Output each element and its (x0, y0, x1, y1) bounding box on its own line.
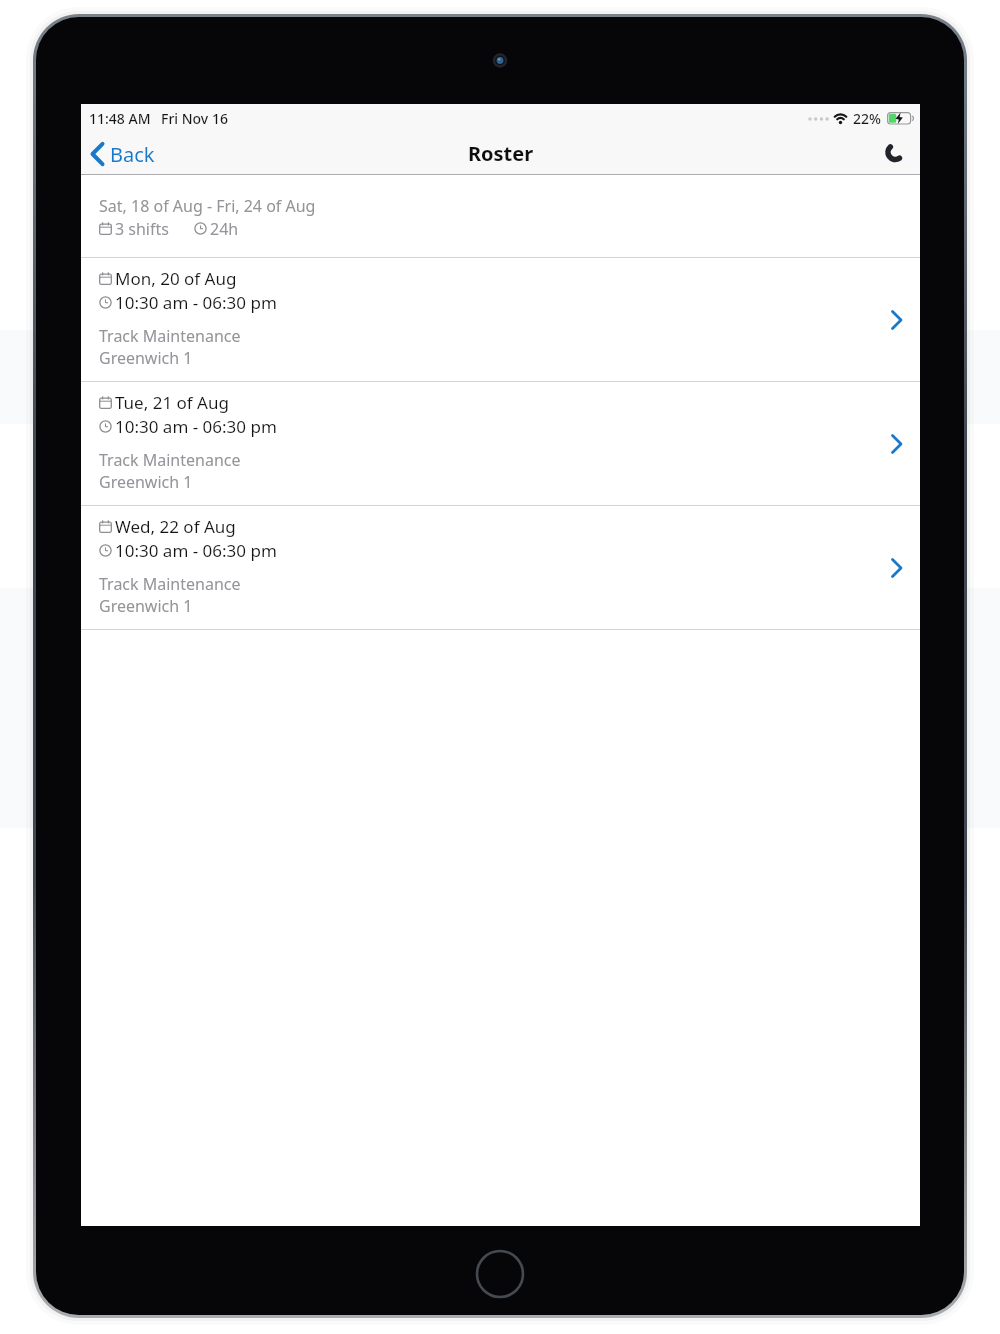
button[interactable]: Mon, 20 of Aug (81, 258, 920, 382)
staticText: Track Maintenance (99, 573, 241, 595)
button[interactable]: Wed, 22 of Aug (81, 506, 920, 630)
staticText: Back (110, 141, 155, 168)
button[interactable]: Back (87, 136, 167, 172)
staticText: Fri Nov 16 (161, 109, 228, 128)
staticText: 24h (210, 218, 239, 240)
button[interactable] (875, 136, 915, 176)
staticText: Wed, 22 of Aug (115, 515, 236, 538)
staticText: Mon, 20 of Aug (115, 267, 237, 290)
staticText: Track Maintenance (99, 449, 241, 471)
staticText: Roster (81, 140, 920, 167)
staticText: Sat, 18 of Aug - Fri, 24 of Aug (99, 195, 316, 217)
staticText: Tue, 21 of Aug (115, 391, 229, 414)
staticText: Greenwich 1 (99, 471, 193, 493)
staticText: Greenwich 1 (99, 347, 193, 369)
staticText: 3 shifts (115, 218, 169, 240)
staticText: 10:30 am - 06:30 pm (115, 415, 277, 438)
button[interactable]: Tue, 21 of Aug (81, 382, 920, 506)
staticText: 10:30 am - 06:30 pm (115, 539, 277, 562)
staticText: Track Maintenance (99, 325, 241, 347)
staticText: 10:30 am - 06:30 pm (115, 291, 277, 314)
staticText: Greenwich 1 (99, 595, 193, 617)
staticText: 11:48 AM (89, 109, 151, 128)
staticText: 22% (853, 109, 881, 128)
